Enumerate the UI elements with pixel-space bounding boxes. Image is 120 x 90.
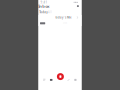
staticText: 9:41 [41,1,48,4]
staticText: Today [39,10,47,14]
button[interactable]: More [72,77,79,82]
button[interactable]: Home [41,77,48,82]
staticText: All [48,10,52,14]
button[interactable]: Create [56,72,65,81]
staticText: Today's Mix [55,16,71,19]
button[interactable]: Compose [65,77,72,82]
button[interactable]: Library [48,77,55,82]
button[interactable]: Account [75,4,80,9]
staticText: Inbox [38,3,49,9]
button[interactable]: Today's Mix [38,15,81,26]
